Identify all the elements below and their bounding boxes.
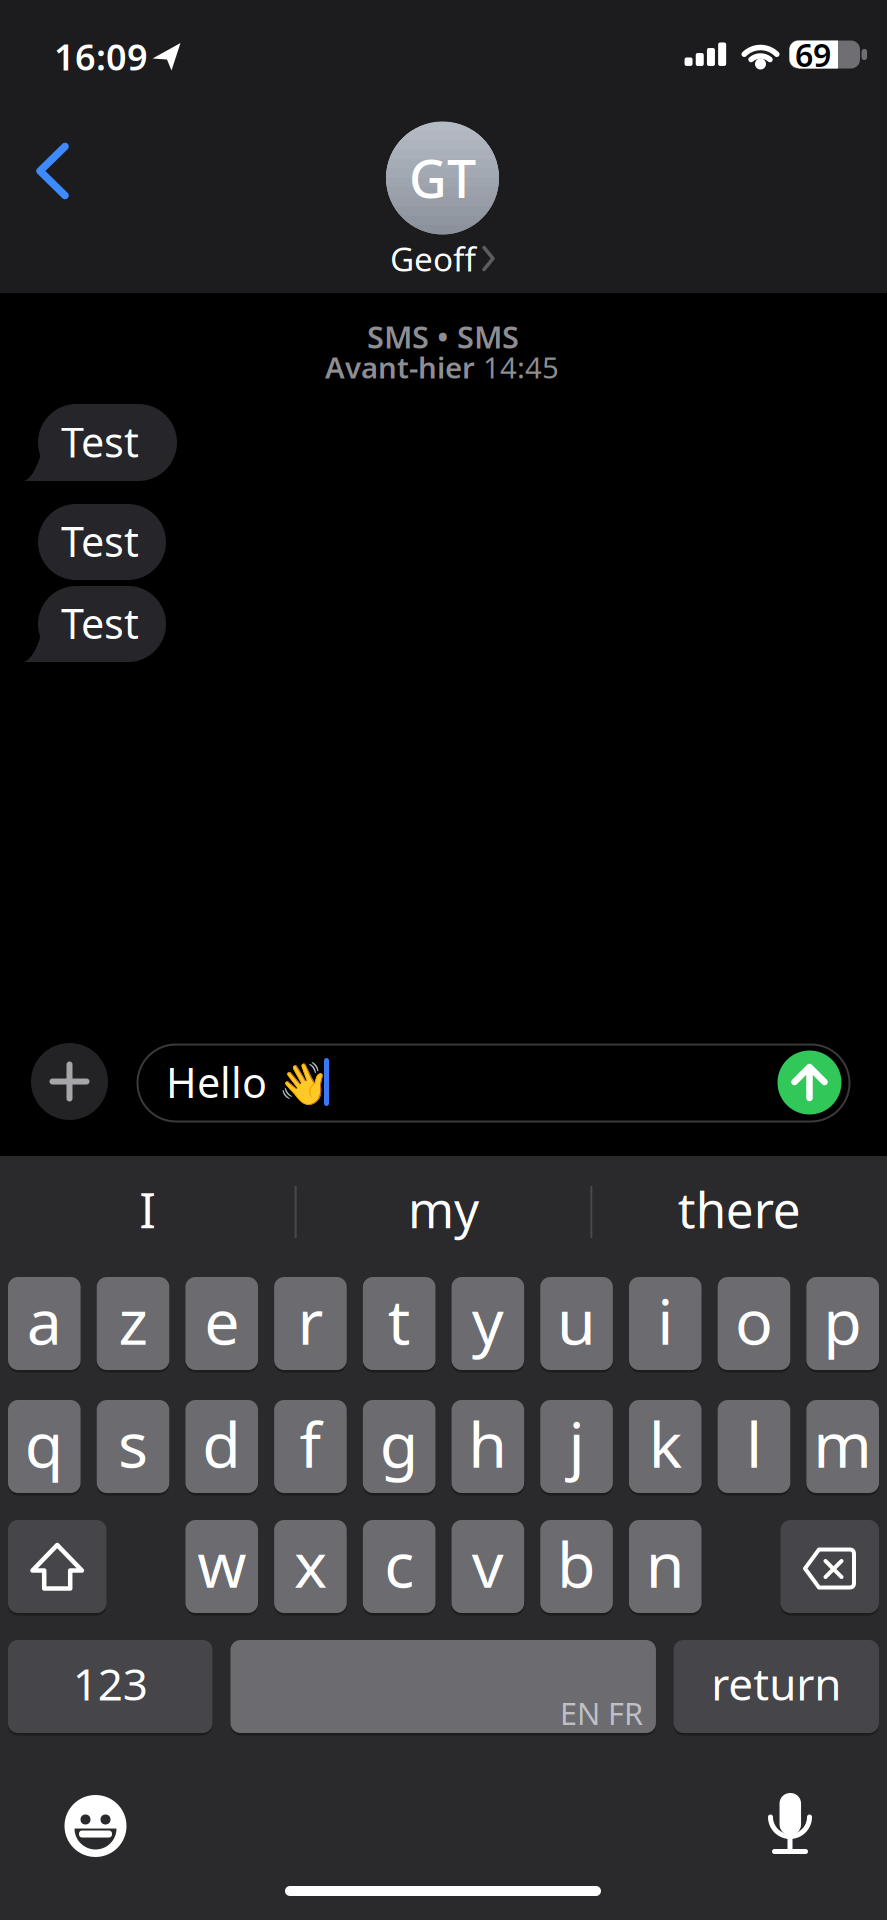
staticText: Test — [61, 596, 139, 650]
staticText: v — [472, 1522, 504, 1605]
button[interactable]: there — [599, 1165, 879, 1253]
staticText: Geoff — [390, 236, 476, 281]
staticText: g — [380, 1402, 419, 1485]
staticText: z — [118, 1279, 147, 1362]
staticText: my — [408, 1176, 479, 1242]
staticText: Hello 👋 — [166, 1055, 329, 1109]
button[interactable]: Delete — [780, 1520, 879, 1613]
staticText: x — [294, 1522, 327, 1605]
button[interactable]: a — [8, 1277, 81, 1370]
staticText: i — [657, 1279, 673, 1362]
button[interactable]: t — [363, 1277, 435, 1370]
staticText: Avant-hier — [325, 347, 475, 386]
button[interactable]: u — [540, 1277, 613, 1370]
button[interactable]: Emoji — [63, 1793, 128, 1858]
button[interactable]: d — [185, 1400, 258, 1493]
staticText: m — [813, 1402, 872, 1485]
staticText: e — [204, 1279, 239, 1362]
button[interactable]: Send — [777, 1050, 841, 1114]
button[interactable]: Back — [37, 144, 68, 197]
staticText: 123 — [73, 1654, 148, 1713]
button[interactable]: my — [303, 1165, 583, 1253]
button[interactable]: w — [185, 1520, 258, 1613]
staticText: EN FR — [560, 1693, 643, 1733]
button[interactable]: return — [673, 1640, 879, 1733]
staticText: 14:45 — [483, 347, 559, 386]
button[interactable]: c — [363, 1520, 435, 1613]
button[interactable]: j — [540, 1400, 613, 1493]
button[interactable]: Space — [230, 1640, 656, 1733]
staticText: j — [569, 1402, 585, 1485]
staticText: o — [735, 1279, 773, 1362]
staticText: there — [678, 1176, 801, 1242]
staticText: y — [472, 1279, 504, 1362]
button[interactable]: g — [363, 1400, 435, 1493]
staticText: a — [27, 1279, 62, 1362]
button[interactable]: f — [274, 1400, 347, 1493]
staticText: SMS • SMS — [367, 316, 519, 357]
button[interactable]: s — [97, 1400, 169, 1493]
staticText: t — [388, 1279, 411, 1362]
button[interactable]: e — [185, 1277, 258, 1370]
staticText: k — [649, 1402, 682, 1485]
staticText: GT — [409, 143, 476, 212]
button[interactable]: k — [629, 1400, 702, 1493]
button[interactable]: Add attachment — [31, 1043, 108, 1120]
staticText: c — [384, 1522, 414, 1605]
button[interactable]: z — [97, 1277, 169, 1370]
staticText: return — [711, 1654, 841, 1713]
button[interactable]: n — [629, 1520, 702, 1613]
staticText: b — [557, 1522, 596, 1605]
button[interactable]: b — [540, 1520, 613, 1613]
button[interactable]: Dictation — [760, 1789, 820, 1859]
staticText: I — [139, 1176, 156, 1242]
staticText: s — [118, 1402, 148, 1485]
staticText: 16:09 — [54, 33, 148, 80]
staticText: Test — [61, 414, 139, 469]
button[interactable]: v — [451, 1520, 524, 1613]
staticText: h — [468, 1402, 507, 1485]
staticText: 69 — [795, 33, 831, 76]
button[interactable]: m — [806, 1400, 879, 1493]
staticText: w — [197, 1522, 246, 1605]
button[interactable]: l — [718, 1400, 790, 1493]
staticText: r — [297, 1279, 323, 1362]
button[interactable]: y — [451, 1277, 524, 1370]
button[interactable]: Geoff, contact details — [386, 121, 499, 281]
staticText: u — [557, 1279, 596, 1362]
button[interactable]: i — [629, 1277, 702, 1370]
staticText: d — [202, 1402, 241, 1485]
staticText: f — [299, 1402, 321, 1485]
button[interactable]: q — [8, 1400, 81, 1493]
button[interactable]: h — [451, 1400, 524, 1493]
staticText: n — [646, 1522, 685, 1605]
button[interactable]: r — [274, 1277, 347, 1370]
button[interactable]: p — [806, 1277, 879, 1370]
staticText: l — [746, 1402, 762, 1485]
button[interactable]: o — [718, 1277, 790, 1370]
staticText: q — [25, 1402, 64, 1485]
button[interactable]: 123 — [8, 1640, 212, 1733]
button[interactable]: Shift — [8, 1520, 106, 1613]
button[interactable]: x — [274, 1520, 347, 1613]
button[interactable]: I — [8, 1165, 288, 1253]
staticText: p — [823, 1279, 862, 1362]
button[interactable]: Hello 👋 — [137, 1044, 849, 1121]
staticText: Test — [61, 514, 139, 568]
